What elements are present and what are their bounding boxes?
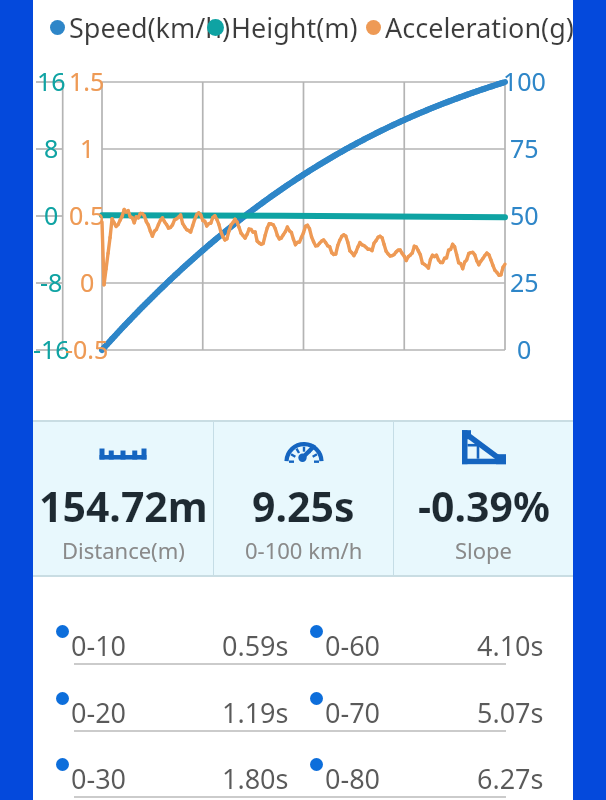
staticText: Acceleration(g) <box>385 9 573 46</box>
button[interactable]: 0-20 <box>56 689 289 741</box>
staticText: 0.5 <box>69 198 105 232</box>
staticText: 1.5 <box>69 64 105 98</box>
button[interactable]: 154.72m <box>33 422 213 575</box>
staticText: 5.07s <box>477 694 544 731</box>
button[interactable]: 0-80 <box>310 755 544 800</box>
staticText: Speed(km/h) <box>69 9 231 46</box>
staticText: 1.19s <box>222 694 289 731</box>
button[interactable]: 9.25s <box>214 422 393 575</box>
staticText: 0.59s <box>222 627 289 664</box>
staticText: -0.39% <box>418 478 550 534</box>
staticText: -16 <box>33 332 70 366</box>
staticText: 16 <box>37 64 66 98</box>
staticText: 0-70 <box>325 694 381 731</box>
staticText: 0 <box>44 198 59 232</box>
staticText: 1 <box>80 131 95 165</box>
staticText: 8 <box>44 131 59 165</box>
button[interactable]: 0-10 <box>56 622 289 674</box>
button[interactable]: 0-70 <box>310 689 544 741</box>
staticText: Height(m) <box>231 9 358 46</box>
staticText: 9.25s <box>252 478 355 534</box>
staticText: 4.10s <box>477 627 544 664</box>
staticText: 0 <box>80 265 95 299</box>
button[interactable]: -0.39% <box>394 422 573 575</box>
staticText: 6.27s <box>477 760 544 797</box>
button[interactable]: 0-30 <box>56 755 289 800</box>
staticText: 50 <box>510 198 539 232</box>
staticText: -8 <box>40 265 63 299</box>
staticText: 0-80 <box>325 760 381 797</box>
staticText: -0.5 <box>65 332 109 366</box>
staticText: 25 <box>510 265 539 299</box>
staticText: Distance(m) <box>62 535 185 565</box>
staticText: Slope <box>455 535 513 565</box>
staticText: 1.80s <box>222 760 289 797</box>
staticText: 0-10 <box>71 627 127 664</box>
staticText: 100 <box>503 64 546 98</box>
staticText: 0-30 <box>71 760 127 797</box>
staticText: 0-20 <box>71 694 127 731</box>
staticText: 0-100 km/h <box>245 535 363 565</box>
staticText: 154.72m <box>39 478 208 534</box>
button[interactable]: 0-60 <box>310 622 544 674</box>
staticText: 0 <box>517 332 532 366</box>
staticText: 0-60 <box>325 627 381 664</box>
staticText: 75 <box>510 131 539 165</box>
